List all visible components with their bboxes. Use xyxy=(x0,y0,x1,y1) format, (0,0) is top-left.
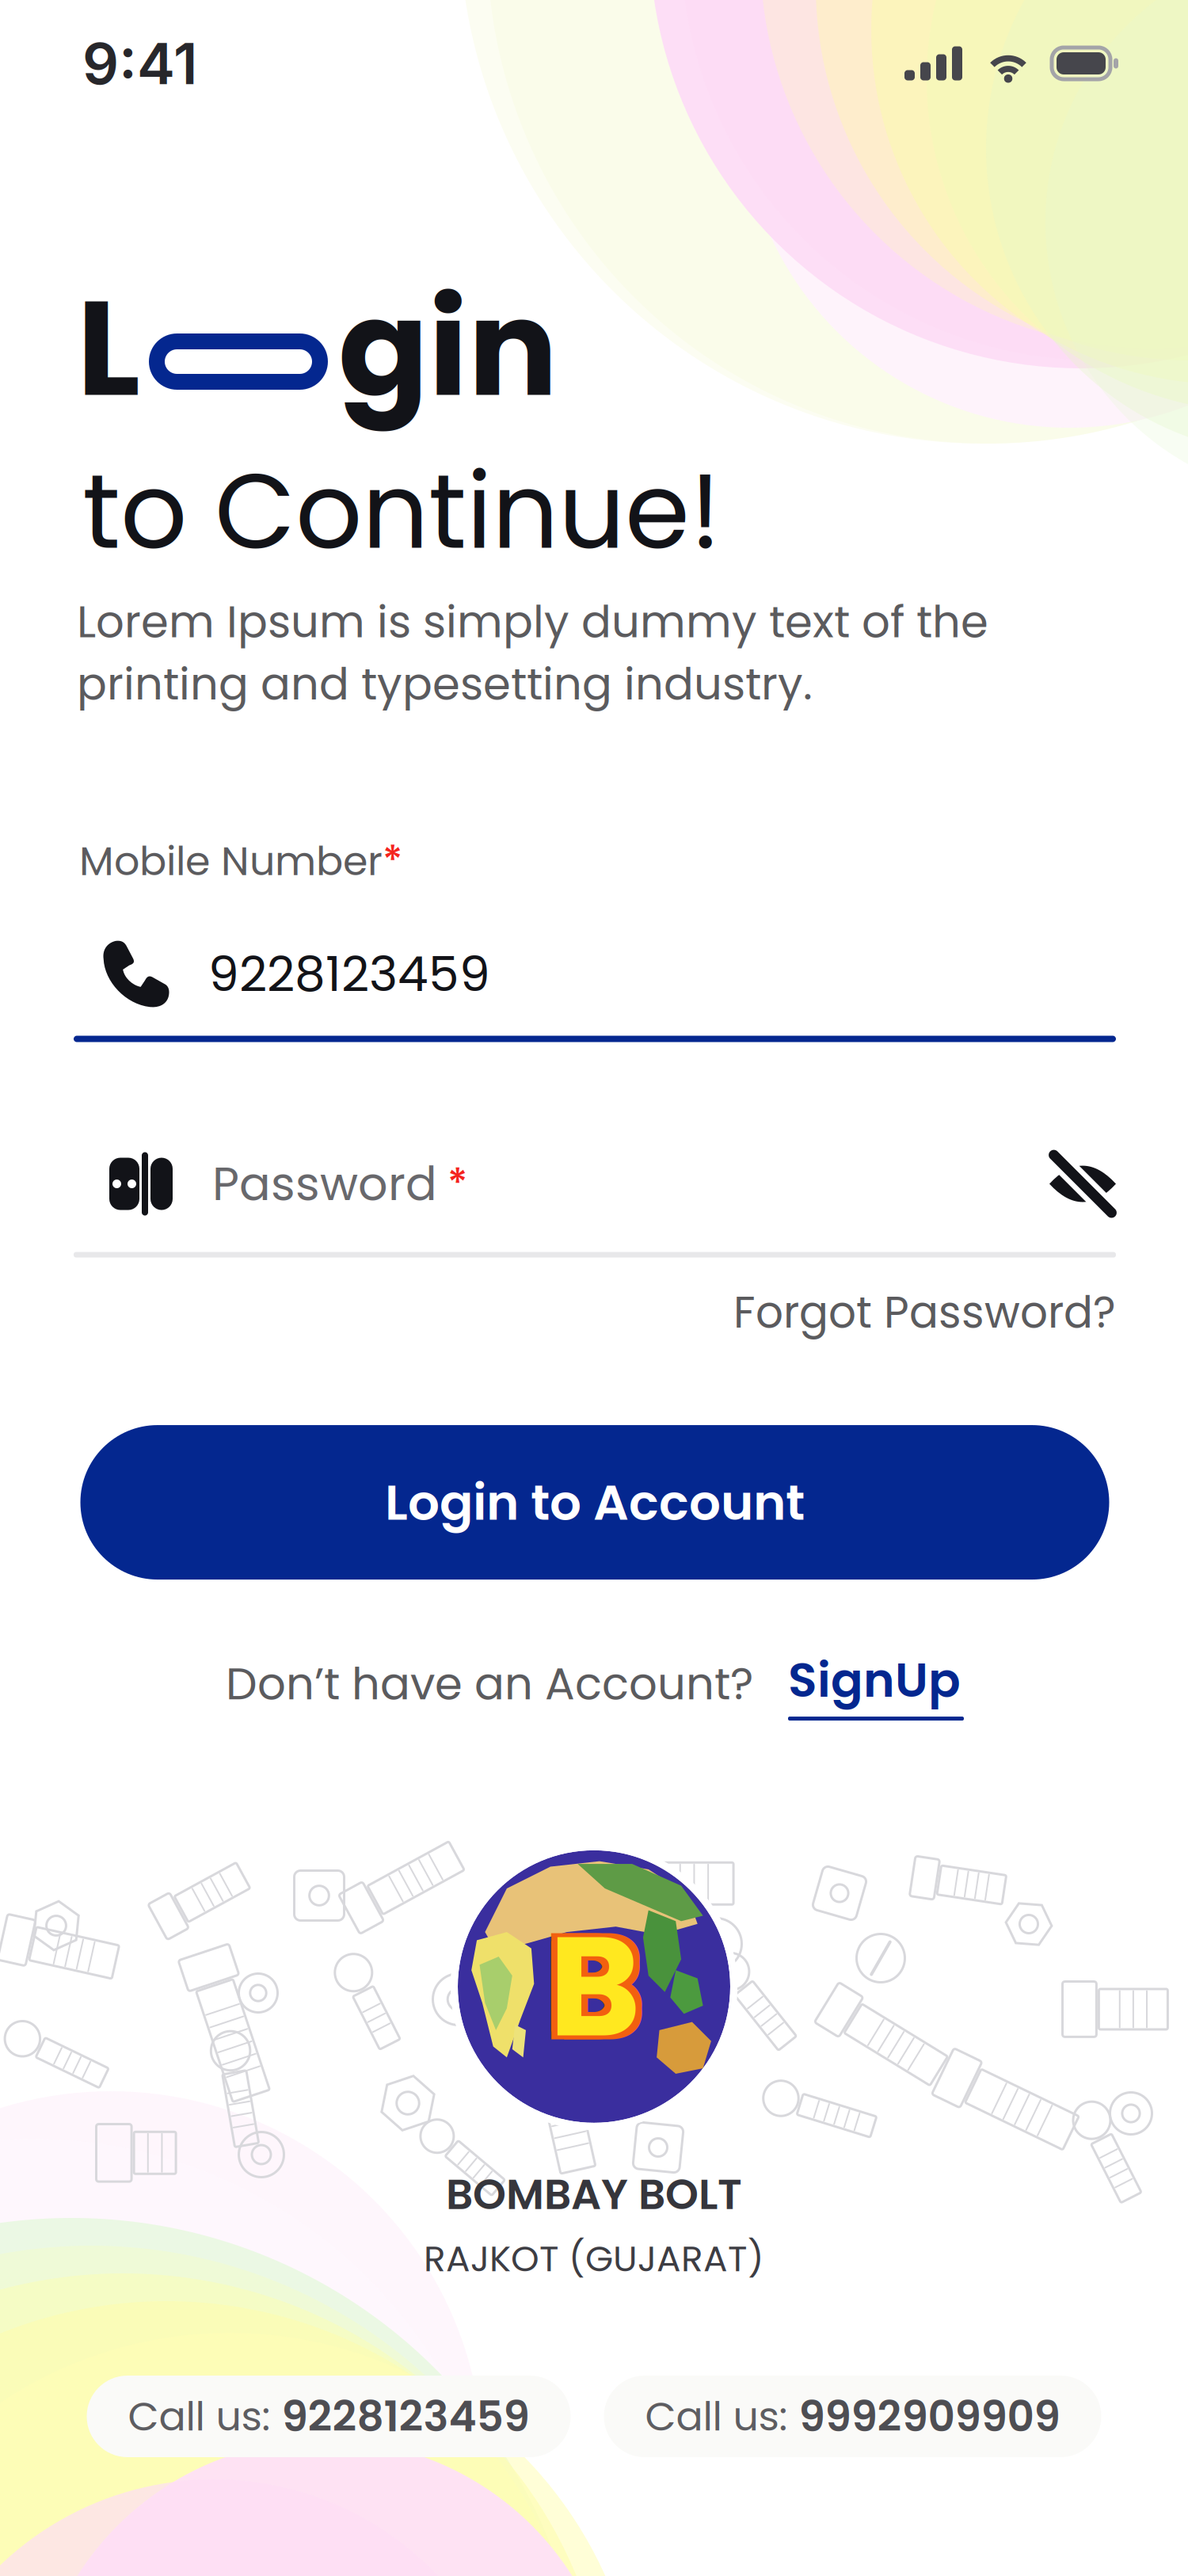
button[interactable]: Login to Account xyxy=(80,1425,1109,1580)
staticText: Login to Account xyxy=(385,1468,805,1537)
staticText: Lorem Ipsum is simply dummy text of the xyxy=(77,591,988,653)
staticText: Mobile Number xyxy=(79,833,383,889)
staticText: 9:41 xyxy=(82,29,197,98)
button[interactable]: SignUp xyxy=(753,1647,964,1721)
staticText: gin xyxy=(338,255,558,441)
staticText: SignUp xyxy=(788,1647,961,1713)
staticText: B xyxy=(543,1893,634,2088)
staticText: B xyxy=(549,1889,641,2084)
staticText: RAJKOT (GUJARAT) xyxy=(424,2233,764,2284)
staticText: 9228123459 xyxy=(208,940,490,1008)
staticText: Forgot Password? xyxy=(733,1282,1116,1343)
staticText: * xyxy=(383,833,403,889)
staticText: 9228123459 xyxy=(282,2387,529,2446)
button[interactable]: Call us: xyxy=(87,2376,571,2457)
staticText: Call us: xyxy=(128,2388,282,2444)
staticText: * xyxy=(437,1156,468,1212)
staticText: L xyxy=(77,255,140,441)
button[interactable]: Call us: xyxy=(604,2376,1101,2457)
staticText: printing and typesetting industry. xyxy=(77,653,813,715)
button[interactable]: Forgot Password? xyxy=(733,1282,1116,1343)
staticText: 9992909909 xyxy=(799,2387,1060,2446)
button[interactable]: Show password xyxy=(1049,1151,1116,1217)
staticText: B xyxy=(555,1885,647,2080)
staticText: to Continue! xyxy=(82,438,721,584)
staticText: B xyxy=(555,1893,647,2088)
staticText: BOMBAY BOLT xyxy=(446,2165,742,2224)
staticText: Password xyxy=(212,1151,437,1216)
staticText: B xyxy=(543,1885,634,2080)
staticText: Call us: xyxy=(645,2388,799,2444)
staticText: Don’t have an Account? xyxy=(226,1653,753,1715)
